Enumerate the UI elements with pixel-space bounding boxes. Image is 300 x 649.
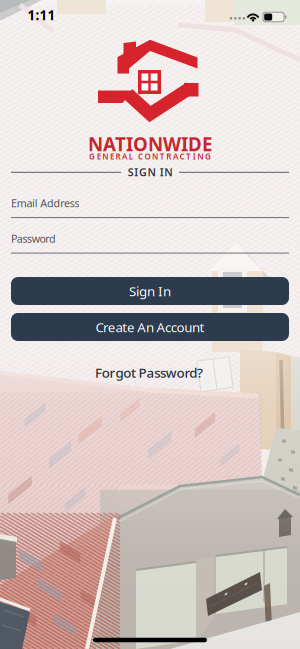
- button[interactable]: Sign In: [11, 277, 289, 305]
- staticText: Email Address: [11, 196, 79, 210]
- staticText: SIGN IN: [128, 165, 172, 179]
- button[interactable]: Forgot Password?: [95, 364, 203, 381]
- staticText: Forgot Password?: [95, 364, 203, 381]
- staticText: Sign In: [129, 282, 171, 300]
- button[interactable]: Password: [11, 231, 289, 254]
- staticText: Create An Account: [95, 318, 205, 336]
- staticText: NATIONWIDE: [88, 132, 212, 156]
- button[interactable]: Create An Account: [11, 313, 289, 341]
- button[interactable]: Email Address: [11, 196, 289, 218]
- staticText: Password: [11, 231, 56, 246]
- staticText: GENERAL CONTRACTING: [89, 151, 211, 162]
- staticText: 1:11: [27, 6, 55, 24]
